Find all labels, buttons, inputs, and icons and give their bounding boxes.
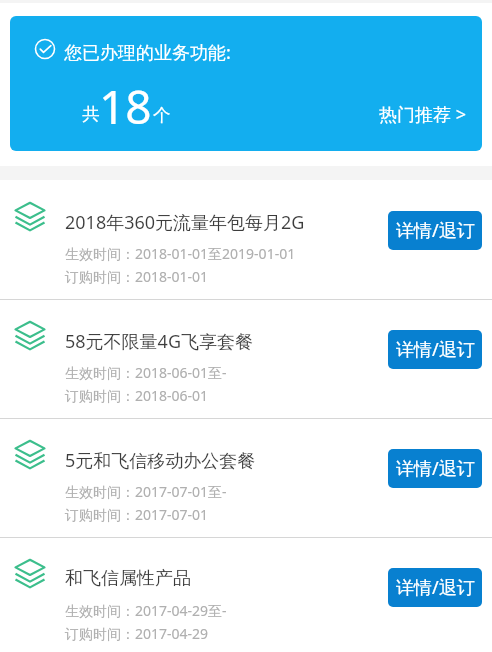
other: Checked — [33, 37, 57, 61]
button[interactable]: 详情/退订 — [388, 449, 482, 488]
staticText: 个 — [153, 104, 171, 126]
button[interactable]: 详情/退订 — [388, 568, 482, 607]
staticText: 订购时间：2017-04-29 — [65, 624, 209, 643]
staticText: 详情/退订 — [396, 337, 475, 362]
button[interactable]: 58元不限量4G飞享套餐 — [0, 299, 492, 418]
staticText: 2018年360元流量年包每月2G — [65, 210, 305, 235]
button[interactable]: 详情/退订 — [388, 330, 482, 369]
staticText: 您已办理的业务功能: — [64, 40, 231, 65]
button[interactable]: 5元和飞信移动办公套餐 — [0, 418, 492, 537]
staticText: 详情/退订 — [396, 456, 475, 481]
button[interactable]: Checked — [10, 16, 482, 151]
staticText: 和飞信属性产品 — [65, 567, 191, 590]
staticText: 订购时间：2018-06-01 — [65, 386, 209, 405]
staticText: 18 — [99, 75, 152, 138]
staticText: 订购时间：2018-01-01 — [65, 267, 209, 286]
staticText: 5元和飞信移动办公套餐 — [65, 448, 256, 473]
staticText: 生效时间：2017-07-01至- — [65, 482, 227, 501]
button[interactable]: 和飞信属性产品 — [0, 537, 492, 652]
staticText: 共 — [82, 103, 100, 125]
staticText: 热门推荐 > — [379, 102, 466, 127]
staticText: 生效时间：2018-06-01至- — [65, 363, 227, 382]
staticText: 详情/退订 — [396, 575, 475, 600]
staticText: 生效时间：2018-01-01至2019-01-01 — [65, 244, 296, 263]
staticText: 订购时间：2017-07-01 — [65, 505, 209, 524]
staticText: 生效时间：2017-04-29至- — [65, 601, 227, 620]
button[interactable]: 热门推荐 > — [369, 92, 476, 137]
staticText: 58元不限量4G飞享套餐 — [65, 329, 253, 354]
button[interactable]: 2018年360元流量年包每月2G — [0, 180, 492, 299]
staticText: 详情/退订 — [396, 218, 475, 243]
button[interactable]: 详情/退订 — [388, 211, 482, 250]
